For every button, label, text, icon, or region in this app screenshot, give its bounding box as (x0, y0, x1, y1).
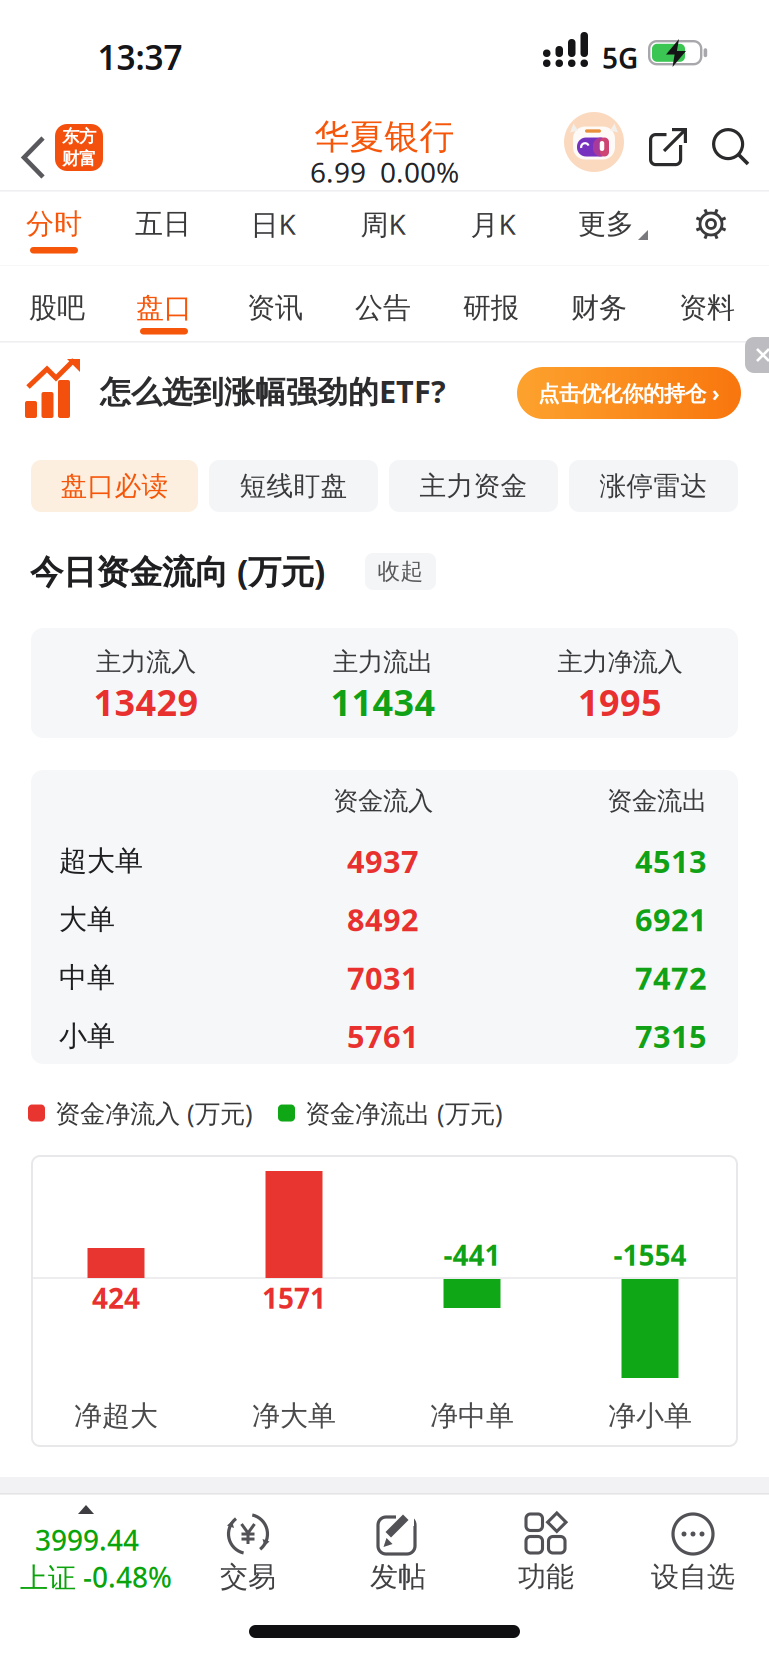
staticText: 股吧 (29, 291, 85, 325)
staticText: 超大单 (59, 844, 143, 878)
staticText: 资金净流出 (万元) (305, 1096, 503, 1130)
button[interactable]: 智能助手 (0, 90, 60, 150)
staticText: 华夏银行 (314, 116, 454, 158)
staticText: 周K (360, 205, 405, 243)
staticText: 今日资金流向 (万元) (30, 549, 325, 593)
button[interactable]: 公告 (0, 266, 100, 306)
staticText: 4513 (635, 841, 707, 881)
staticText: 大单 (59, 902, 115, 937)
staticText: 8492 (347, 899, 419, 940)
staticText: 6921 (635, 899, 707, 940)
staticText: 主力流出 (333, 646, 433, 677)
staticText: 净小单 (608, 1399, 692, 1433)
staticText: 主力资金 (419, 470, 527, 502)
staticText: 研报 (463, 291, 519, 325)
button[interactable]: 盘口必读 (0, 460, 167, 512)
staticText: 日K (250, 205, 295, 243)
staticText: 发帖 (370, 1560, 426, 1594)
button[interactable]: 3999.44 (0, 1477, 186, 1607)
staticText: 主力净流入 (557, 646, 682, 677)
staticText: 资讯 (247, 291, 303, 325)
button[interactable]: 分时 (0, 191, 100, 231)
button[interactable]: Settings (0, 191, 34, 225)
staticText: 7031 (347, 957, 419, 998)
staticText: 11434 (330, 678, 435, 726)
staticText: 五日 (135, 207, 191, 241)
staticText: 盘口必读 (60, 470, 168, 502)
staticText: 上证 -0.48% (20, 1558, 172, 1596)
staticText: 5761 (347, 1016, 419, 1056)
button[interactable]: 研报 (0, 266, 100, 306)
staticText: 13429 (93, 678, 198, 726)
button[interactable]: 收起 (0, 546, 71, 583)
staticText: 1995 (578, 678, 662, 726)
staticText: 资金流入 (333, 785, 433, 816)
staticText: 主力流入 (96, 646, 196, 677)
staticText: 424 (92, 1279, 140, 1317)
staticText: 短线盯盘 (239, 470, 347, 502)
button[interactable]: 盘口 (0, 266, 100, 306)
staticText: 更多 (578, 207, 634, 241)
staticText: -1554 (613, 1236, 686, 1274)
staticText: 13:37 (97, 35, 182, 79)
staticText: 公告 (355, 291, 411, 325)
button[interactable]: 更多 (0, 191, 90, 237)
staticText: 小单 (59, 1019, 115, 1053)
staticText: 3999.44 (35, 1521, 139, 1559)
staticText: 5G (602, 39, 638, 77)
staticText: 6.99 0.00% (310, 153, 459, 191)
staticText: 7315 (635, 1016, 707, 1056)
staticText: 涨停雷达 (599, 470, 707, 502)
staticText: 7472 (635, 957, 707, 998)
staticText: 1571 (262, 1279, 326, 1317)
button[interactable]: 交易 (0, 1477, 148, 1607)
staticText: 资料 (679, 291, 735, 325)
staticText: 资金净流入 (万元) (55, 1096, 253, 1130)
button[interactable]: 五日 (0, 191, 100, 231)
button[interactable]: 短线盯盘 (0, 460, 169, 512)
staticText: 收起 (377, 558, 423, 585)
staticText: 净超大 (74, 1399, 158, 1433)
staticText: 净中单 (430, 1399, 514, 1433)
staticText: 分时 (26, 207, 82, 241)
button[interactable]: 点击优化你的持仓 › (0, 343, 224, 395)
staticText: 交易 (220, 1560, 276, 1594)
button[interactable]: 股吧 (0, 266, 100, 306)
staticText: 设自选 (651, 1560, 735, 1594)
button[interactable]: 资料 (0, 266, 100, 306)
button[interactable]: 周K (0, 191, 100, 231)
button[interactable]: Close (0, 343, 36, 379)
button[interactable]: 功能 (0, 1477, 148, 1607)
staticText: 盘口 (136, 291, 192, 325)
staticText: 月K (470, 205, 515, 243)
staticText: 财务 (571, 291, 627, 325)
button[interactable]: 设自选 (0, 1477, 148, 1607)
button[interactable]: 资讯 (0, 266, 100, 306)
staticText: 点击优化你的持仓 › (538, 379, 720, 407)
button[interactable]: 主力资金 (0, 460, 169, 512)
staticText: 财富 (62, 148, 96, 169)
staticText: 资金流出 (607, 785, 707, 816)
staticText: 中单 (59, 961, 115, 995)
staticText: 功能 (518, 1560, 574, 1594)
staticText: -441 (443, 1236, 500, 1274)
staticText: 净大单 (252, 1399, 336, 1433)
button[interactable]: 发帖 (0, 1477, 148, 1607)
staticText: 东方 (62, 126, 96, 147)
button[interactable]: 涨停雷达 (0, 460, 169, 512)
button[interactable]: 月K (0, 191, 100, 231)
staticText: 怎么选到涨幅强劲的ETF? (100, 371, 446, 411)
button[interactable]: 日K (0, 191, 100, 231)
staticText: 4937 (347, 841, 419, 881)
button[interactable]: 财务 (0, 266, 100, 306)
